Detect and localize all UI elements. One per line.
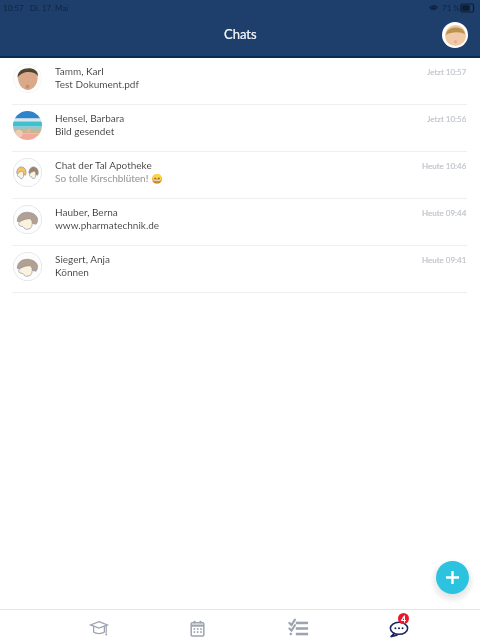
button[interactable]: Chat der Tal Apotheke	[0, 152, 480, 199]
staticText: Tamm, Karl	[55, 65, 104, 77]
staticText: Heute 09:44	[422, 208, 467, 218]
button[interactable]: Lernen	[75, 610, 123, 641]
staticText: Jetzt 10:56	[427, 114, 467, 124]
staticText: So tolle Kirschblüten!	[55, 172, 149, 184]
staticText: Können	[55, 266, 89, 278]
staticText: 10:57	[3, 3, 24, 13]
button[interactable]: Aufgaben	[274, 610, 322, 641]
staticText: Di. 17. Mai	[30, 3, 69, 13]
button[interactable]: Hauber, Berna	[0, 199, 480, 246]
button[interactable]: Siegert, Anja	[0, 246, 480, 293]
staticText: 71 %	[442, 3, 460, 13]
staticText: Test Dokument.pdf	[55, 78, 139, 90]
button[interactable]: Kalender	[173, 610, 221, 641]
staticText: Hauber, Berna	[55, 206, 118, 218]
button[interactable]: Tamm, Karl	[0, 58, 480, 105]
staticText: Bild gesendet	[55, 125, 115, 137]
staticText: Heute 10:46	[422, 161, 467, 171]
staticText: Chats	[224, 26, 257, 42]
staticText: Siegert, Anja	[55, 253, 110, 265]
staticText: Chat der Tal Apotheke	[55, 159, 152, 171]
staticText: 4	[401, 614, 406, 624]
button[interactable]: Profil	[442, 22, 468, 48]
staticText: Heute 09:41	[422, 255, 467, 265]
button[interactable]: Hensel, Barbara	[0, 105, 480, 152]
button[interactable]: Chats	[374, 610, 422, 641]
staticText: Jetzt 10:57	[427, 67, 467, 77]
staticText: Hensel, Barbara	[55, 112, 125, 124]
button[interactable]: Neuer Chat	[436, 561, 469, 594]
staticText: www.pharmatechnik.de	[55, 219, 160, 231]
